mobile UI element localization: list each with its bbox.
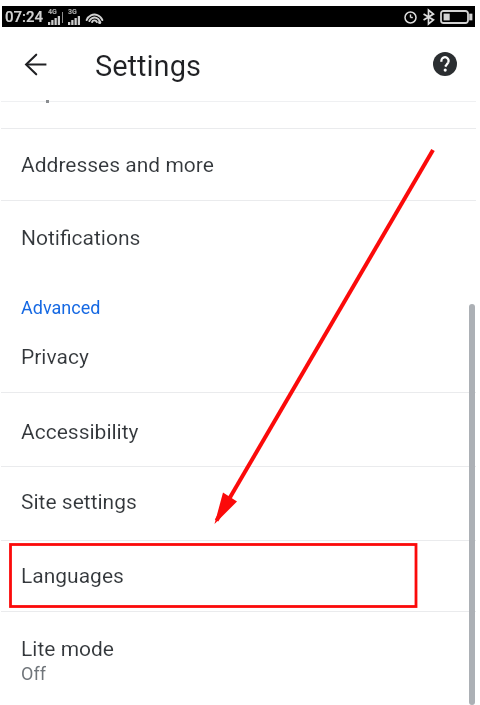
staticText: Accessibility — [21, 420, 139, 445]
staticText: 3G — [68, 8, 77, 16]
staticText: 4G — [48, 8, 57, 16]
staticText: Settings — [95, 49, 201, 83]
button[interactable]: Back — [12, 40, 60, 88]
staticText: Site settings — [21, 490, 137, 515]
button[interactable]: Lite mode — [0, 612, 480, 705]
staticText: Privacy — [21, 345, 89, 370]
staticText: Addresses and more — [21, 153, 214, 178]
button[interactable]: Notifications — [0, 203, 480, 273]
staticText: Advanced — [21, 297, 101, 318]
button[interactable]: Site settings — [0, 467, 480, 537]
staticText: Notifications — [21, 226, 141, 251]
button[interactable]: Accessibility — [0, 397, 480, 467]
staticText: 07:24 — [5, 8, 44, 26]
staticText: Off — [21, 663, 46, 684]
button[interactable]: Languages — [0, 541, 480, 611]
button[interactable] — [0, 92, 480, 128]
button[interactable]: Addresses and more — [0, 130, 480, 200]
button[interactable]: Help — [425, 44, 465, 84]
button[interactable]: Privacy — [0, 322, 480, 392]
staticText: Lite mode — [21, 637, 115, 662]
staticText: Languages — [21, 564, 124, 589]
